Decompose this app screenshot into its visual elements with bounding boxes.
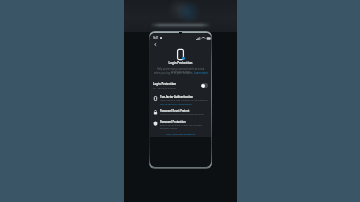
staticText: when you log in to your account. bbox=[154, 71, 194, 74]
staticText: Two-factor Authentication bbox=[160, 95, 193, 98]
staticText: Password Reset Protect bbox=[160, 109, 190, 112]
staticText: Help protect your account with an extra … bbox=[151, 67, 210, 73]
staticText: Protect your account from unauthorised r… bbox=[160, 113, 204, 116]
staticText: Require personal info to reset your pass… bbox=[160, 124, 203, 130]
button[interactable]: Learn more bbox=[194, 71, 208, 74]
staticText: 9:41 bbox=[153, 36, 159, 40]
staticText: On - Two-factor enabled bbox=[153, 87, 176, 90]
staticText: Login Protection bbox=[150, 61, 211, 65]
button[interactable]: Back bbox=[153, 42, 158, 47]
button[interactable]: Password Protection bbox=[150, 120, 211, 130]
staticText: Password Protection bbox=[160, 120, 186, 123]
staticText: Login requires a code in addition to you… bbox=[160, 99, 208, 102]
button[interactable]: Two-factor Authentication bbox=[150, 95, 211, 106]
button[interactable]: Turn off two-factor authentication bbox=[160, 103, 192, 106]
button[interactable]: Login Protection bbox=[150, 82, 211, 90]
button[interactable]: Password Reset Protect bbox=[150, 109, 211, 116]
button[interactable]: Learn about login verification bbox=[150, 133, 211, 136]
staticText: Login Protection bbox=[153, 82, 177, 86]
